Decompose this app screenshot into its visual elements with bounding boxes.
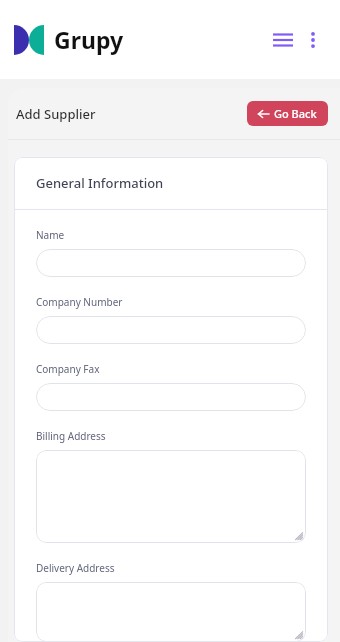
button[interactable]	[36, 249, 306, 277]
button[interactable]	[36, 316, 306, 344]
staticText: Company Number	[36, 295, 123, 309]
button[interactable]: More options	[300, 27, 326, 53]
button[interactable]: Grupy	[12, 24, 124, 55]
staticText: Add Supplier	[16, 105, 96, 123]
staticText: Billing Address	[36, 429, 106, 443]
button[interactable]: Go Back	[247, 101, 328, 126]
staticText: Delivery Address	[36, 561, 115, 575]
staticText: Go Back	[274, 106, 317, 121]
button[interactable]	[36, 450, 306, 543]
button[interactable]: Menu	[268, 25, 298, 55]
staticText: Grupy	[54, 24, 124, 55]
staticText: General Information	[36, 174, 164, 192]
staticText: Company Fax	[36, 362, 100, 376]
staticText: Name	[36, 228, 65, 242]
button[interactable]	[36, 383, 306, 411]
button[interactable]	[36, 582, 306, 642]
